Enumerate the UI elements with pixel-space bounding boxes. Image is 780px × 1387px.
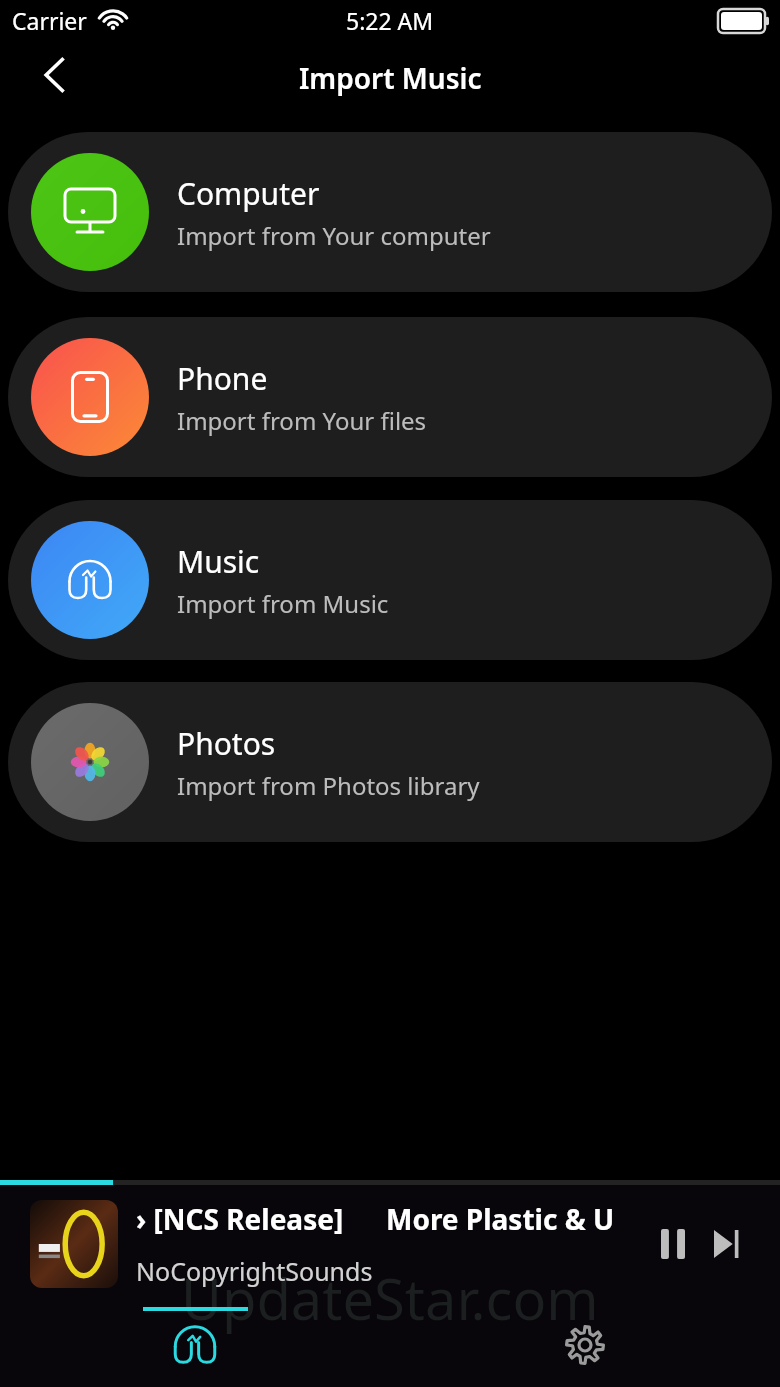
staticText: Music bbox=[177, 541, 260, 582]
staticText: 5:22 AM bbox=[346, 5, 434, 36]
staticText: NoCopyrightSounds bbox=[136, 1254, 373, 1288]
button[interactable]: Settings bbox=[390, 1303, 780, 1387]
button[interactable]: Phone bbox=[8, 317, 772, 477]
staticText: › [NCS Release] bbox=[136, 1200, 344, 1238]
staticText: More Plastic & U bbox=[386, 1200, 615, 1238]
staticText: Import Music bbox=[299, 59, 482, 97]
staticText: Phone bbox=[177, 358, 268, 399]
button[interactable]: Music bbox=[8, 500, 772, 660]
button[interactable]: Pause bbox=[646, 1217, 700, 1271]
staticText: Import from Your files bbox=[177, 404, 427, 437]
button[interactable]: Next track bbox=[700, 1217, 754, 1271]
staticText: Import from Your computer bbox=[177, 219, 491, 252]
staticText: Computer bbox=[177, 173, 320, 214]
button[interactable]: Photos bbox=[8, 682, 772, 842]
staticText: Photos bbox=[177, 723, 276, 764]
button[interactable] bbox=[30, 1200, 118, 1288]
staticText: Import from Music bbox=[177, 587, 389, 620]
button[interactable]: Back bbox=[22, 42, 88, 108]
staticText: UpdateStar.com bbox=[181, 1260, 599, 1336]
staticText: Carrier bbox=[12, 5, 87, 36]
button[interactable]: Computer bbox=[8, 132, 772, 292]
staticText: Import from Photos library bbox=[177, 769, 480, 802]
button[interactable]: Player bbox=[0, 1303, 390, 1387]
